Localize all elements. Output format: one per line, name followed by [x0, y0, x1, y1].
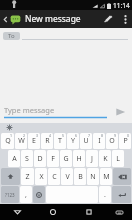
button[interactable]: C: [48, 168, 60, 185]
button[interactable]: T: [54, 133, 66, 149]
button[interactable]: ,: [20, 186, 32, 203]
button[interactable]: P: [119, 133, 131, 149]
button[interactable]: Attach: [98, 10, 118, 28]
staticText: V: [65, 172, 70, 182]
staticText: .: [104, 190, 106, 200]
staticText: Y: [71, 136, 75, 146]
button[interactable]: To: [0, 28, 132, 44]
staticText: L: [116, 154, 120, 164]
button[interactable]: Backspace: [113, 168, 131, 185]
button[interactable]: B: [74, 168, 86, 185]
staticText: 8: [101, 133, 104, 138]
button[interactable]: G: [60, 150, 72, 167]
staticText: H: [76, 154, 82, 164]
staticText: 4: [49, 133, 52, 138]
staticText: W: [18, 136, 25, 146]
staticText: B: [78, 172, 83, 182]
button[interactable]: O: [106, 133, 118, 149]
button[interactable]: Emoji: [33, 186, 45, 203]
staticText: M: [103, 172, 110, 182]
staticText: G: [63, 154, 69, 164]
button[interactable]: Home: [35, 204, 71, 220]
staticText: K: [103, 154, 108, 164]
button[interactable]: W: [15, 133, 27, 149]
staticText: S: [25, 154, 29, 164]
staticText: Q: [5, 136, 11, 146]
staticText: I: [98, 136, 101, 146]
staticText: O: [109, 136, 115, 146]
button[interactable]: M: [100, 168, 112, 185]
button[interactable]: .: [99, 186, 111, 203]
button[interactable]: R: [41, 133, 53, 149]
staticText: 9: [114, 133, 117, 138]
button[interactable]: Type message: [4, 105, 107, 119]
button[interactable]: S: [21, 150, 33, 167]
staticText: X: [39, 172, 44, 182]
staticText: R: [45, 136, 50, 146]
button[interactable]: F: [47, 150, 59, 167]
staticText: 11:14: [113, 1, 130, 10]
staticText: Type message: [4, 105, 55, 115]
staticText: 6: [75, 133, 78, 138]
button[interactable]: Enter: [112, 186, 131, 203]
button[interactable]: N: [87, 168, 99, 185]
staticText: 1: [10, 133, 13, 138]
staticText: New message: [25, 13, 81, 25]
button[interactable]: Input settings: [6, 124, 13, 131]
button[interactable]: V: [61, 168, 73, 185]
staticText: J: [91, 154, 93, 164]
button[interactable]: Navigate up: [0, 12, 23, 27]
button[interactable]: Z: [21, 168, 34, 185]
button[interactable]: Y: [67, 133, 79, 149]
staticText: C: [52, 172, 57, 182]
staticText: T: [58, 136, 62, 146]
button[interactable]: U: [80, 133, 92, 149]
button[interactable]: D: [34, 150, 46, 167]
button[interactable]: Shift: [1, 168, 20, 185]
button[interactable]: Q: [1, 133, 14, 149]
button[interactable]: I: [93, 133, 105, 149]
staticText: N: [90, 172, 96, 182]
button[interactable]: Send: [111, 103, 129, 121]
button[interactable]: Back: [0, 204, 35, 220]
staticText: ,: [25, 190, 27, 200]
button[interactable]: J: [86, 150, 98, 167]
staticText: Z: [25, 172, 30, 182]
button[interactable]: E: [28, 133, 40, 149]
staticText: ?123: [5, 192, 15, 198]
staticText: 0: [127, 133, 130, 138]
button[interactable]: K: [99, 150, 111, 167]
button[interactable]: A: [8, 150, 20, 167]
button[interactable]: Recent apps: [71, 204, 107, 220]
staticText: F: [51, 154, 55, 164]
staticText: 5: [62, 133, 65, 138]
staticText: A: [12, 154, 17, 164]
button[interactable]: Symbols: [1, 186, 19, 203]
staticText: 3: [36, 133, 39, 138]
staticText: E: [32, 136, 36, 146]
staticText: To: [8, 32, 15, 40]
staticText: 7: [88, 133, 91, 138]
staticText: P: [123, 136, 128, 146]
staticText: D: [37, 154, 43, 164]
button[interactable]: More options: [118, 10, 132, 28]
button[interactable]: L: [112, 150, 124, 167]
staticText: 2: [23, 133, 26, 138]
button[interactable]: Switch keyboard: [107, 204, 132, 220]
button[interactable]: X: [35, 168, 47, 185]
button[interactable]: H: [73, 150, 85, 167]
staticText: U: [83, 136, 89, 146]
